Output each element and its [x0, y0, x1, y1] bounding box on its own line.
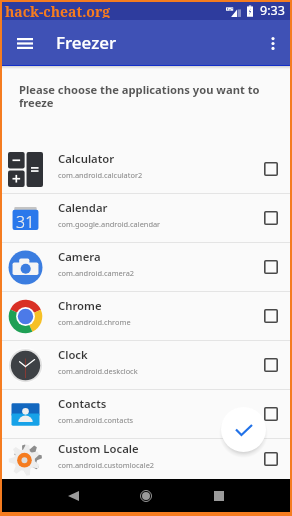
- button[interactable]: Contacts: [2, 390, 290, 438]
- button[interactable]: More options: [258, 28, 288, 58]
- button[interactable]: Chrome: [2, 292, 290, 340]
- staticText: Calculator: [58, 151, 115, 166]
- staticText: 9:33: [260, 2, 285, 19]
- staticText: com.android.chrome: [58, 317, 131, 327]
- button[interactable]: Clock: [2, 341, 290, 389]
- button[interactable]: Calculator: [2, 145, 290, 193]
- button[interactable]: Camera: [2, 243, 290, 291]
- staticText: Chrome: [58, 298, 102, 313]
- staticText: com.android.customlocale2: [58, 460, 155, 470]
- staticText: hack-cheat.org: [5, 2, 111, 18]
- staticText: 31: [16, 211, 35, 233]
- staticText: Camera: [58, 249, 101, 264]
- button[interactable]: Open navigation drawer: [9, 27, 41, 59]
- staticText: com.android.calculator2: [58, 170, 143, 180]
- staticText: Calendar: [58, 200, 108, 215]
- staticText: com.android.deskclock: [58, 366, 138, 376]
- button[interactable]: Confirm selection: [221, 407, 266, 452]
- staticText: Custom Locale: [58, 441, 139, 456]
- staticText: Please choose the applications you want …: [19, 82, 270, 110]
- button[interactable]: Custom Locale: [2, 439, 290, 479]
- staticText: com.google.android.calendar: [58, 219, 161, 229]
- staticText: com.android.contacts: [58, 415, 134, 425]
- button[interactable]: 31: [2, 194, 290, 242]
- staticText: Clock: [58, 347, 88, 362]
- button[interactable]: Back: [60, 483, 86, 509]
- button[interactable]: Home: [133, 483, 159, 509]
- staticText: Freezer: [56, 31, 117, 54]
- staticText: Contacts: [58, 396, 107, 411]
- button[interactable]: Recent apps: [206, 483, 232, 509]
- staticText: com.android.camera2: [58, 268, 135, 278]
